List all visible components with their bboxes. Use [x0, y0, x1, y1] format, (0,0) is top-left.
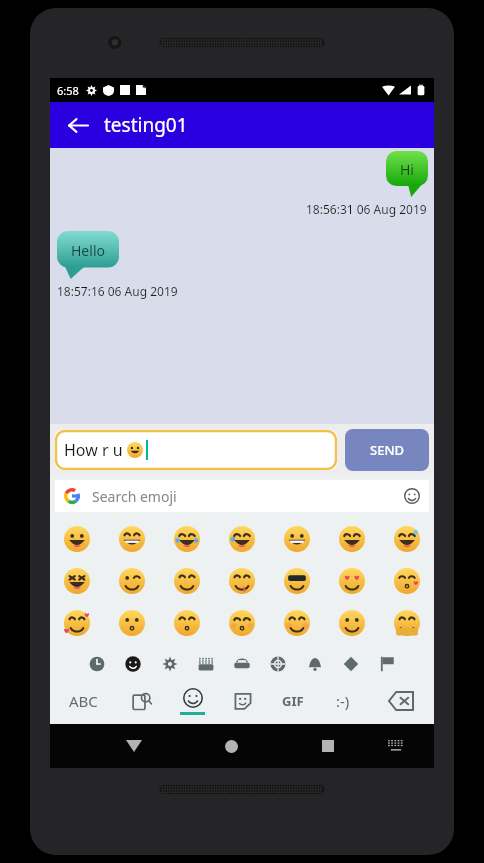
button[interactable]: Emoji category 2 — [120, 651, 146, 677]
button[interactable]: Recents — [309, 727, 347, 765]
button[interactable]: Emoji category 5 — [229, 651, 255, 677]
button[interactable] — [324, 560, 379, 602]
staticText: GIF — [282, 692, 304, 710]
button[interactable]: Backspace — [368, 681, 434, 721]
staticText: ABC — [69, 691, 98, 711]
button[interactable]: Emoji category 4 — [193, 651, 219, 677]
button[interactable] — [50, 518, 104, 560]
button[interactable]: GIF — [268, 681, 318, 721]
button[interactable] — [104, 560, 159, 602]
staticText: Hello — [71, 241, 105, 260]
button[interactable] — [159, 518, 214, 560]
button[interactable] — [214, 560, 269, 602]
button[interactable] — [324, 518, 379, 560]
button[interactable]: Search images — [116, 681, 167, 721]
button[interactable] — [159, 602, 214, 644]
button[interactable] — [104, 602, 159, 644]
button[interactable]: Search emoji — [55, 480, 429, 512]
button[interactable] — [104, 518, 159, 560]
button[interactable] — [50, 560, 104, 602]
button[interactable]: Home — [212, 727, 250, 765]
button[interactable]: How r u — [55, 430, 337, 470]
staticText: 6:58 — [57, 83, 79, 98]
staticText: 18:57:16 06 Aug 2019 — [57, 283, 178, 299]
button[interactable] — [379, 518, 434, 560]
button[interactable] — [50, 602, 104, 644]
button[interactable] — [269, 518, 324, 560]
button[interactable] — [214, 518, 269, 560]
button[interactable]: Emoji category 6 — [265, 651, 291, 677]
button[interactable] — [379, 602, 434, 644]
staticText: Search emoji — [92, 487, 177, 506]
button[interactable] — [324, 602, 379, 644]
button[interactable]: :-) — [318, 681, 368, 721]
button[interactable]: Back — [56, 104, 98, 146]
staticText: :-) — [336, 691, 350, 711]
button[interactable]: Emoji — [167, 681, 218, 721]
button[interactable]: Switch keyboard — [379, 729, 413, 763]
button[interactable] — [214, 602, 269, 644]
button[interactable]: Emoji category 3 — [157, 651, 183, 677]
button[interactable]: SEND — [345, 429, 429, 471]
button[interactable]: ABC — [50, 681, 116, 721]
staticText: testing01 — [104, 112, 188, 138]
staticText: How r u — [64, 439, 127, 461]
button[interactable]: Emoji category 9 — [374, 651, 400, 677]
staticText: SEND — [370, 441, 404, 459]
button[interactable]: Emoji category 1 — [84, 651, 110, 677]
button[interactable] — [379, 560, 434, 602]
button[interactable]: Emoji category 7 — [302, 651, 328, 677]
button[interactable] — [269, 560, 324, 602]
button[interactable]: Emoji category 8 — [338, 651, 364, 677]
button[interactable] — [159, 560, 214, 602]
staticText: Hi — [400, 160, 414, 179]
button[interactable]: Back — [115, 727, 153, 765]
button[interactable]: Stickers — [218, 681, 268, 721]
staticText: 18:56:31 06 Aug 2019 — [306, 201, 427, 217]
button[interactable] — [269, 602, 324, 644]
